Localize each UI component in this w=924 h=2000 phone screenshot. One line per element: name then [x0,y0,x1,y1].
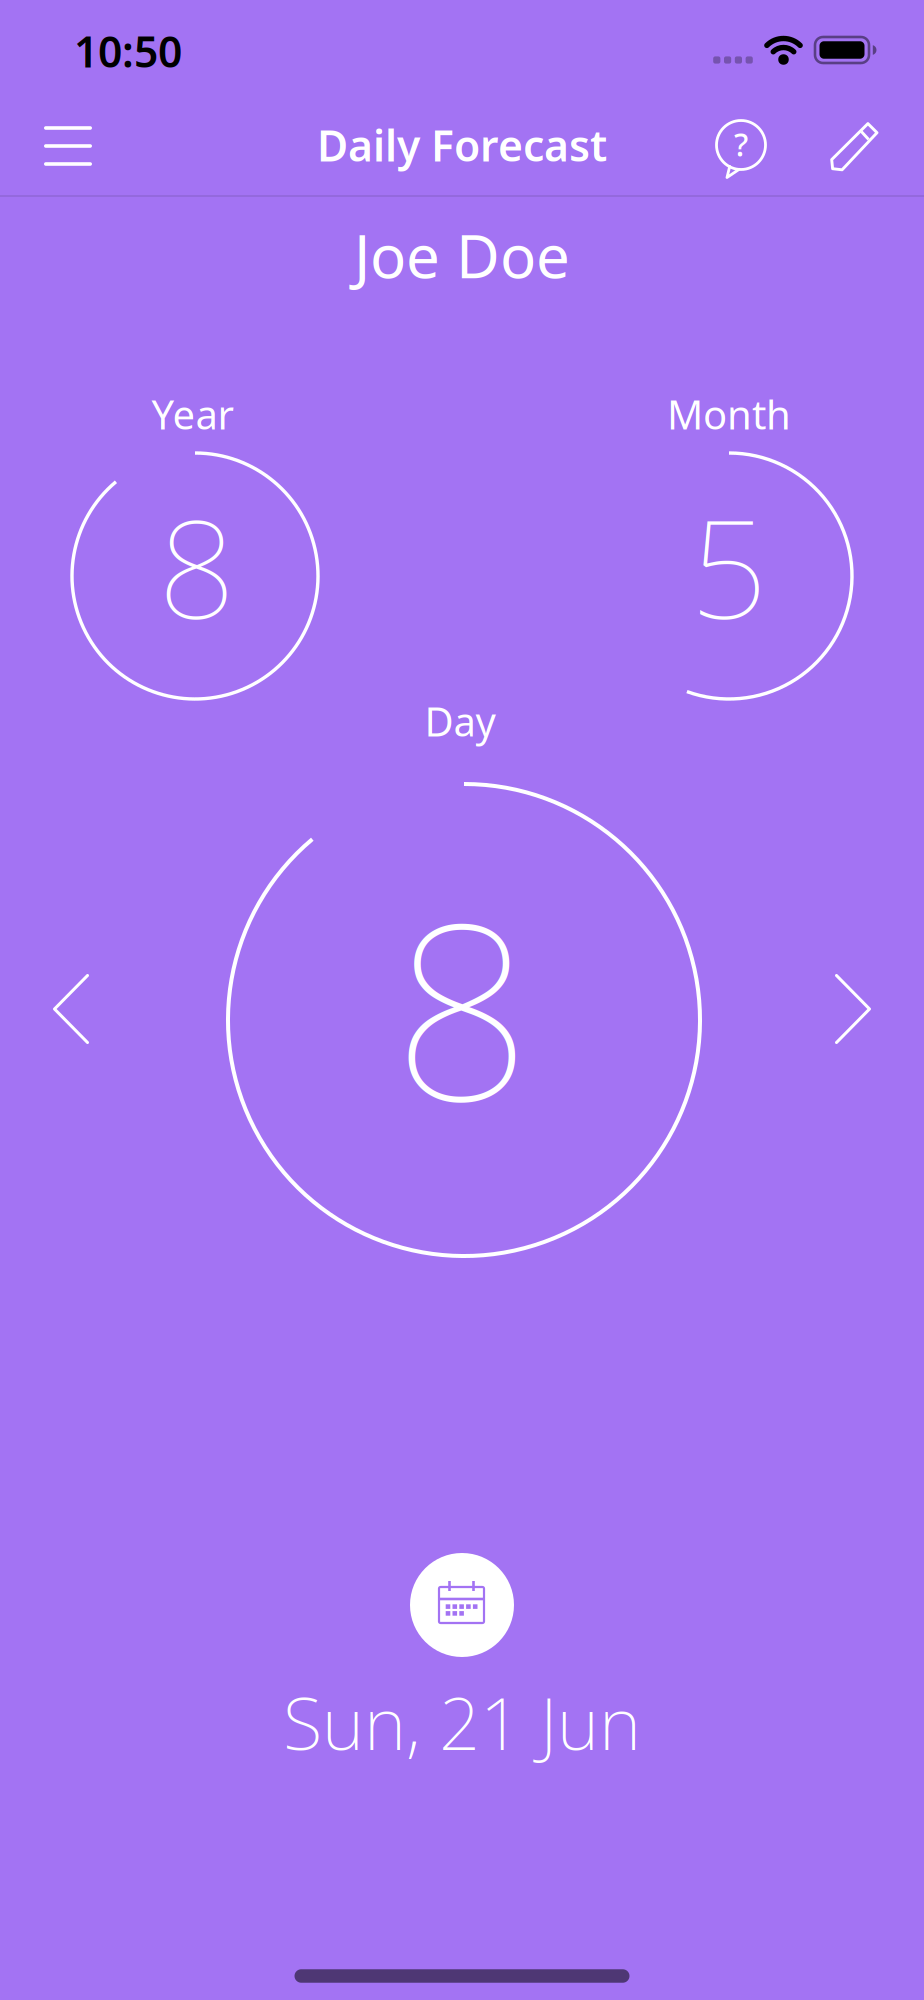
button[interactable]: Edit [830,122,880,172]
staticText: Joe Doe [354,215,570,295]
staticText: 10:50 [74,23,182,79]
button[interactable]: Help [715,121,767,181]
staticText: 5 [690,476,768,656]
staticText: 8 [393,845,531,1168]
button[interactable]: Previous day [50,972,92,1046]
staticText: Year [151,387,234,440]
staticText: ? [734,123,748,165]
button[interactable]: Menu [44,116,92,176]
staticText: Month [667,387,791,440]
button[interactable]: Next day [832,972,874,1046]
staticText: Daily Forecast [317,117,607,173]
button[interactable]: Choose date [410,1553,514,1657]
staticText: 8 [158,476,236,656]
staticText: Sun, 21 Jun [283,1674,641,1770]
staticText: Day [424,694,495,747]
